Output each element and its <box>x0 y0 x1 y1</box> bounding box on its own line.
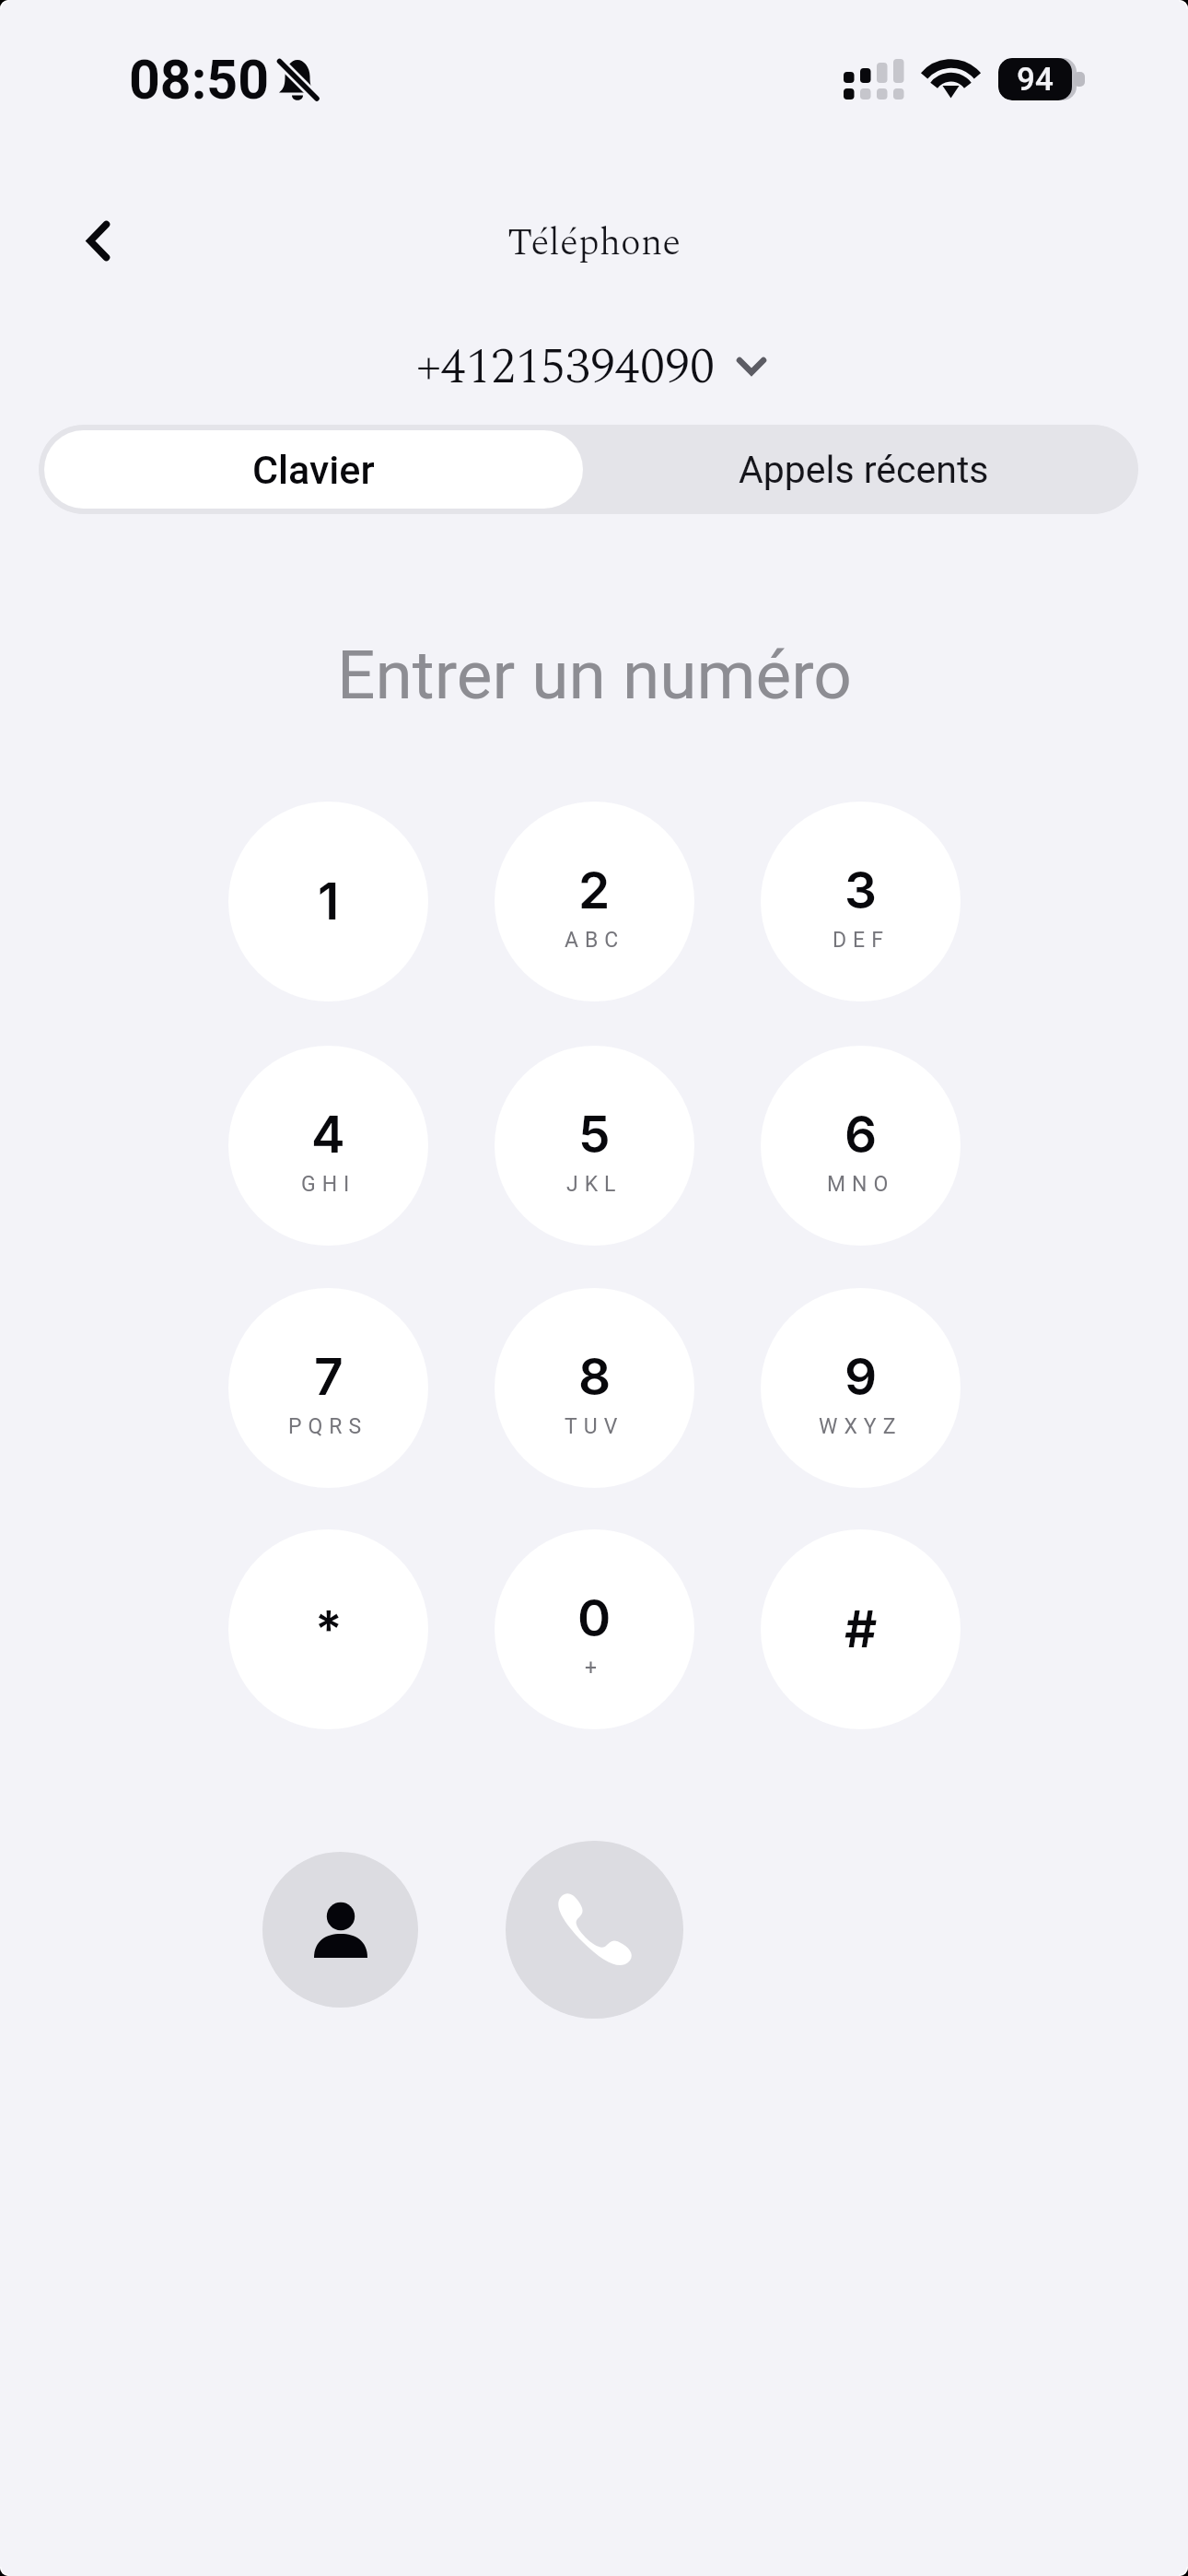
button[interactable]: * <box>228 1529 428 1729</box>
staticText: TUV <box>565 1414 624 1439</box>
staticText: DEF <box>833 928 890 953</box>
button[interactable]: Call <box>506 1841 683 2019</box>
staticText: GHI <box>301 1172 356 1197</box>
staticText: 94 <box>1017 61 1054 99</box>
staticText: 8 <box>578 1346 611 1408</box>
staticText: 9 <box>844 1346 878 1408</box>
staticText: 08:50 <box>129 48 270 111</box>
button[interactable]: 2 <box>495 802 694 1001</box>
staticText: 7 <box>314 1346 344 1408</box>
button[interactable]: 8 <box>495 1288 694 1488</box>
staticText: 2 <box>578 860 611 921</box>
staticText: 0 <box>577 1587 611 1649</box>
staticText: JKL <box>566 1172 623 1197</box>
staticText: ABC <box>565 928 625 953</box>
staticText: + <box>585 1656 604 1680</box>
staticText: Clavier <box>252 447 375 493</box>
staticText: MNO <box>827 1172 895 1197</box>
staticText: Appels récents <box>739 448 989 492</box>
button[interactable]: 0 <box>495 1529 694 1729</box>
staticText: Téléphone <box>507 215 681 272</box>
staticText: # <box>844 1598 878 1660</box>
button[interactable]: 6 <box>761 1046 961 1246</box>
staticText: 5 <box>578 1104 611 1165</box>
staticText: +41215394090 <box>416 330 715 405</box>
button[interactable]: 1 <box>228 802 428 1001</box>
button[interactable]: 7 <box>228 1288 428 1488</box>
button[interactable]: Contacts <box>262 1852 418 2008</box>
staticText: 4 <box>311 1104 345 1165</box>
staticText: PQRS <box>288 1414 368 1439</box>
button[interactable]: 9 <box>761 1288 961 1488</box>
button[interactable]: 3 <box>761 802 961 1001</box>
staticText: 6 <box>844 1104 878 1165</box>
button[interactable]: # <box>761 1529 961 1729</box>
button[interactable]: Appels récents <box>588 425 1138 514</box>
staticText: WXYZ <box>819 1414 903 1439</box>
button[interactable]: 5 <box>495 1046 694 1246</box>
staticText: * <box>315 1598 343 1660</box>
button[interactable]: +41215394090 <box>416 330 772 405</box>
staticText: 3 <box>844 860 877 921</box>
button[interactable]: Back <box>53 197 142 286</box>
staticText: Entrer un numéro <box>337 636 852 715</box>
button[interactable]: 4 <box>228 1046 428 1246</box>
staticText: 1 <box>318 871 340 932</box>
button[interactable]: Clavier <box>44 430 583 509</box>
